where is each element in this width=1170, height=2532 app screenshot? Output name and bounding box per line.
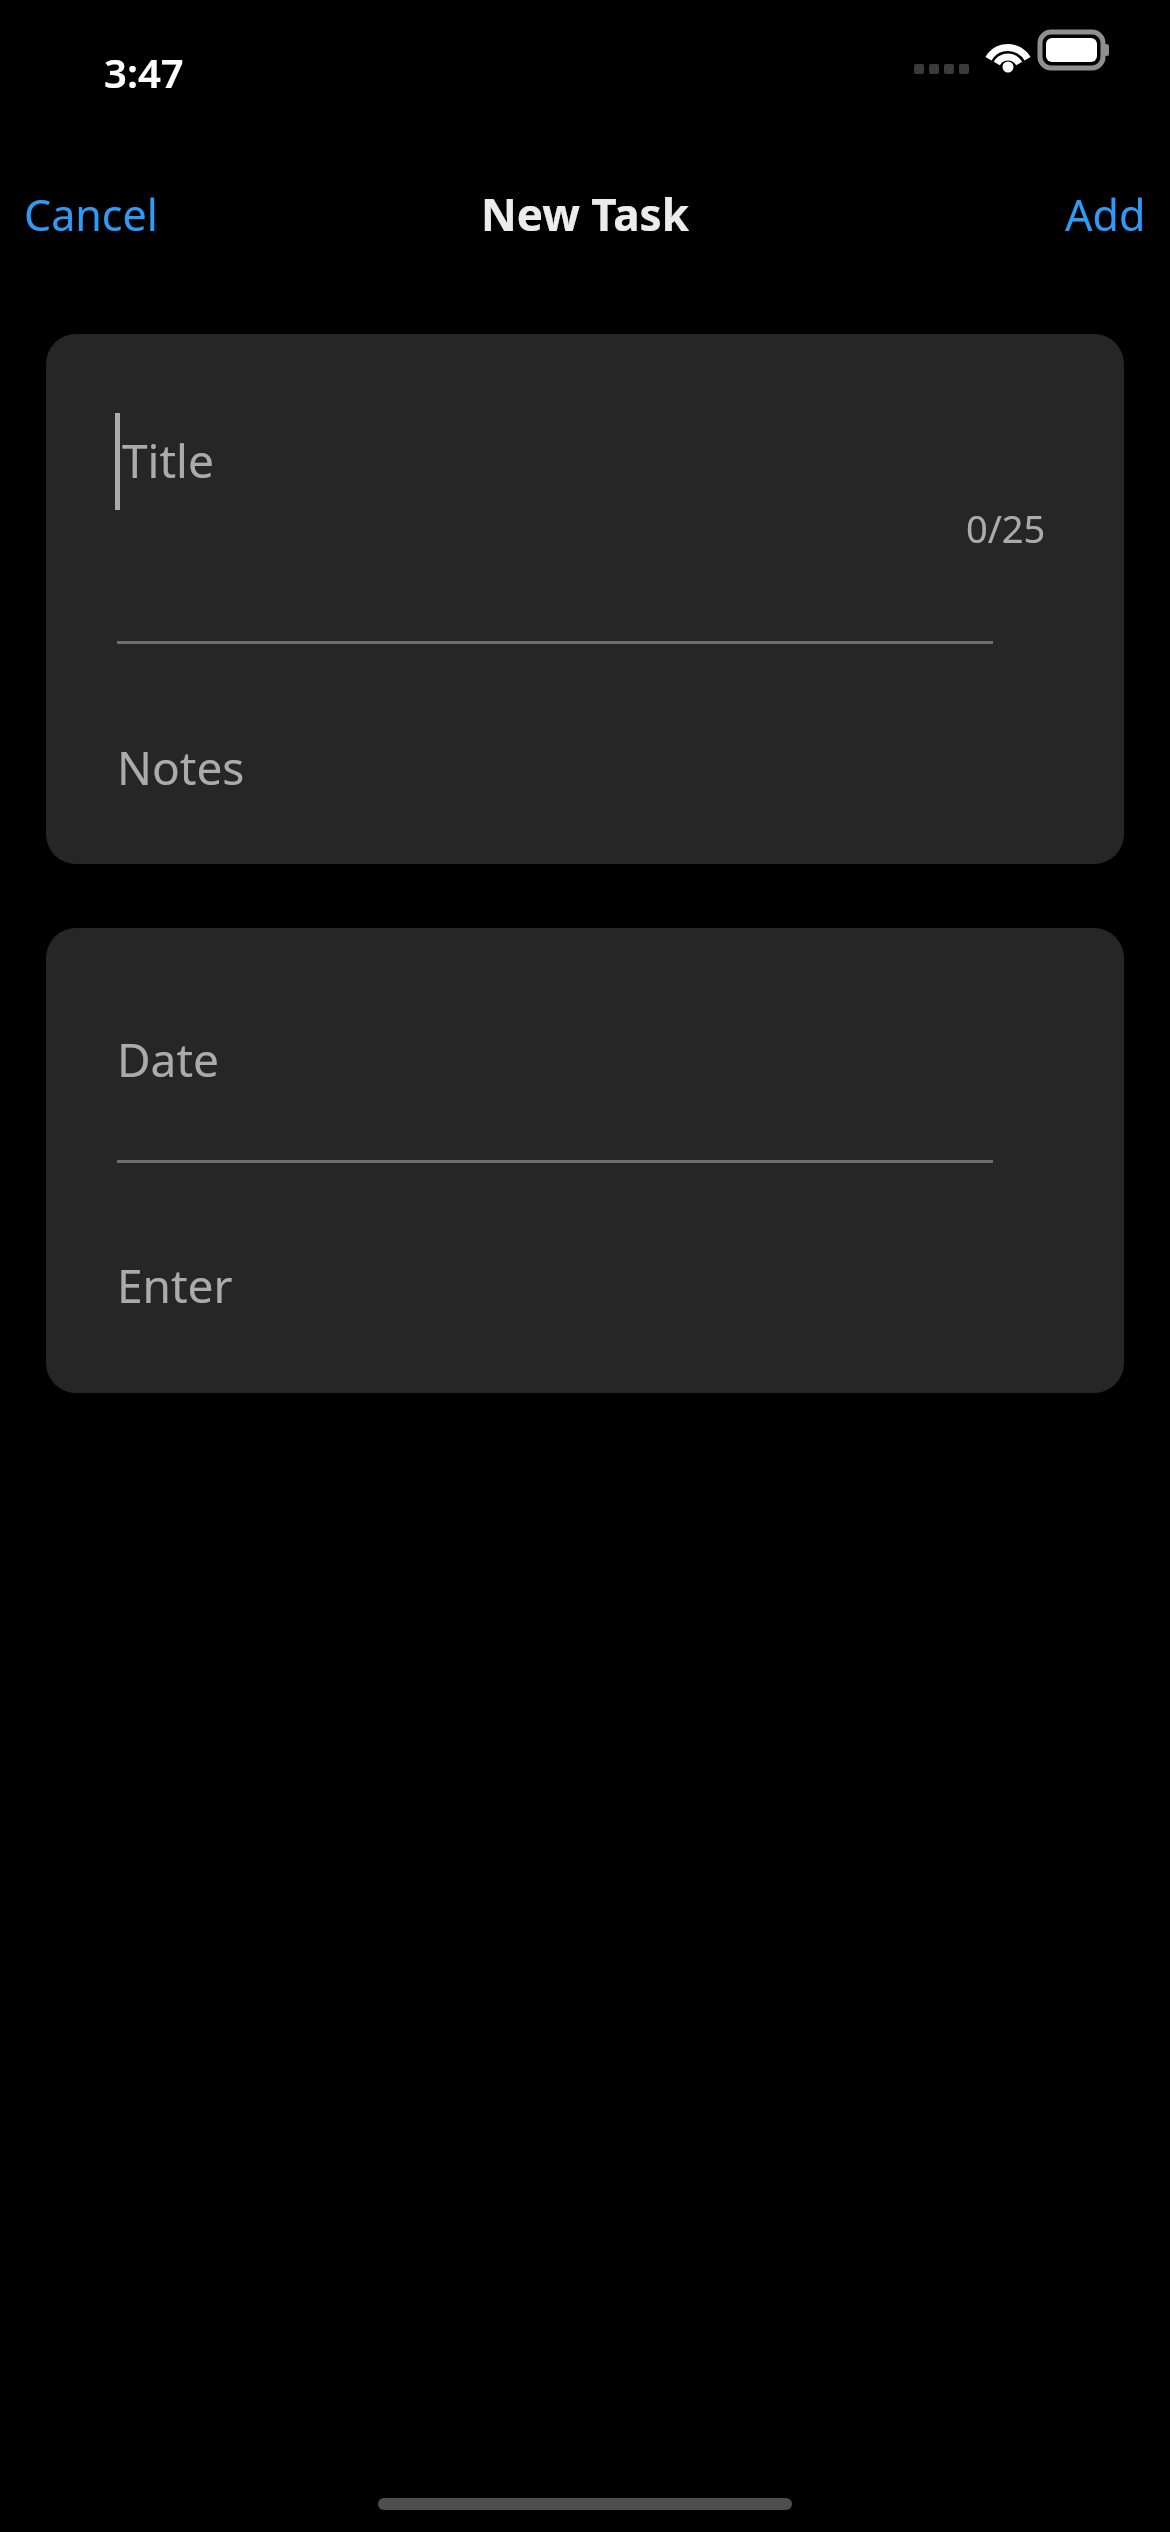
button[interactable]: Notes — [46, 646, 1124, 864]
staticText: Cancel — [24, 185, 158, 244]
staticText: New Task — [481, 184, 689, 244]
staticText: 0/25 — [966, 502, 1046, 554]
button[interactable]: Add — [1041, 171, 1170, 258]
button[interactable]: Enter — [46, 1164, 1124, 1393]
staticText: Notes — [117, 736, 245, 799]
button[interactable]: Cancel — [0, 171, 182, 258]
button[interactable]: Date — [46, 928, 1124, 1164]
staticText: Title — [122, 429, 214, 492]
staticText: Date — [117, 1028, 219, 1091]
staticText: 3:47 — [104, 45, 184, 99]
button[interactable]: Title — [46, 334, 1124, 646]
staticText: Add — [1065, 185, 1146, 244]
staticText: Enter — [117, 1254, 233, 1317]
